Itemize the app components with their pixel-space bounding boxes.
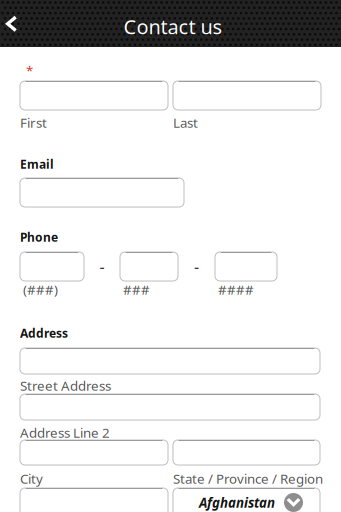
staticText: Address Line 2	[20, 424, 110, 441]
button[interactable]: Afghanistan	[173, 488, 320, 512]
staticText: City	[20, 470, 43, 487]
staticText: Address	[20, 325, 68, 341]
staticText: First	[20, 114, 47, 131]
staticText: State / Province / Region	[173, 470, 323, 487]
staticText: *	[26, 62, 33, 79]
staticText: -	[194, 256, 199, 277]
staticText: Afghanistan	[199, 494, 275, 511]
staticText: ###	[123, 281, 150, 298]
staticText: ####	[218, 281, 254, 298]
staticText: Email	[20, 156, 54, 172]
staticText: -	[99, 256, 104, 277]
staticText: (###)	[23, 281, 58, 298]
staticText: Contact us	[123, 13, 222, 40]
staticText: Phone	[20, 229, 58, 245]
staticText: Street Address	[20, 377, 111, 394]
button[interactable]: Back	[0, 0, 34, 47]
staticText: Last	[173, 114, 198, 131]
